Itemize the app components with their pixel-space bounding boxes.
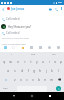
staticText: q — [3, 60, 5, 64]
button[interactable]: . — [47, 84, 53, 93]
button[interactable]: Call — [53, 6, 59, 12]
button[interactable]: e — [14, 57, 21, 66]
button[interactable]: Voice — [54, 45, 63, 50]
staticText: m — [50, 78, 53, 82]
button[interactable]: Send — [53, 84, 64, 93]
button[interactable]: c — [24, 75, 30, 84]
button[interactable]: ?123 — [0, 84, 11, 93]
button[interactable]: Hey! How are you? — [1, 24, 32, 29]
staticText: k — [51, 69, 53, 73]
staticText: c — [26, 78, 28, 82]
button[interactable]: m — [48, 75, 54, 84]
staticText: Call ended — [6, 31, 20, 35]
button[interactable]: Sticker — [18, 45, 27, 50]
staticText: Joe Jonas — [11, 7, 25, 11]
button[interactable]: Shift — [0, 75, 11, 84]
button[interactable]: k — [49, 66, 55, 75]
button[interactable]: Location — [45, 45, 54, 50]
button[interactable]: u — [40, 57, 46, 66]
button[interactable]: Home — [28, 92, 36, 100]
button[interactable]: Call ended — [2, 17, 20, 21]
button[interactable]: r — [21, 57, 28, 66]
button[interactable]: i — [46, 57, 52, 66]
button[interactable]: p — [58, 57, 64, 66]
button[interactable]: The — [22, 52, 43, 57]
button[interactable]: Video call — [47, 6, 53, 12]
button[interactable]: Recents — [46, 92, 54, 100]
staticText: . — [50, 87, 51, 90]
button[interactable]: Back — [0, 6, 6, 12]
staticText: e — [17, 60, 19, 64]
staticText: j — [46, 69, 47, 73]
staticText: b — [38, 78, 40, 82]
staticText: o — [54, 60, 56, 64]
staticText: t — [30, 60, 32, 64]
button[interactable]: n — [42, 75, 48, 84]
button[interactable]: Attach — [36, 45, 45, 50]
button[interactable]: j — [43, 66, 49, 75]
staticText: Hey! How are you? — [8, 25, 32, 29]
button[interactable]: Gif — [27, 45, 36, 50]
staticText: y — [36, 60, 38, 64]
button[interactable]: q — [0, 57, 7, 66]
staticText: I'm — [52, 53, 56, 56]
button[interactable]: Backspace — [54, 75, 64, 84]
staticText: u — [42, 60, 44, 64]
button[interactable]: Camera — [1, 45, 9, 50]
staticText: x — [20, 78, 22, 82]
button[interactable]: o — [52, 57, 58, 66]
button[interactable]: y — [34, 57, 40, 66]
staticText: a — [7, 69, 9, 73]
button[interactable]: , — [11, 84, 17, 93]
button[interactable]: Call ended — [2, 31, 20, 35]
button[interactable]: b — [36, 75, 42, 84]
button[interactable]: a — [4, 66, 11, 75]
staticText: Type a message here — [2, 42, 26, 45]
button[interactable]: v — [30, 75, 36, 84]
button[interactable]: x — [18, 75, 24, 84]
staticText: I — [11, 53, 12, 56]
button[interactable]: I — [0, 52, 22, 57]
button[interactable]: g — [31, 66, 37, 75]
button[interactable]: Back — [10, 92, 18, 100]
staticText: s — [14, 69, 16, 73]
staticText: f — [28, 69, 29, 73]
staticText: Tap here to call back again — [2, 37, 30, 40]
button[interactable]: s — [11, 66, 18, 75]
staticText: z — [14, 78, 16, 82]
staticText: g — [33, 69, 35, 73]
staticText: The — [31, 53, 35, 56]
staticText: i — [49, 60, 50, 64]
staticText: h — [39, 69, 41, 73]
staticText: Call ended — [6, 17, 20, 21]
button[interactable]: w — [7, 57, 14, 66]
button[interactable]: h — [37, 66, 43, 75]
button[interactable]: More options — [59, 6, 64, 11]
staticText: r — [24, 60, 26, 64]
button[interactable]: f — [25, 66, 31, 75]
staticText: l — [58, 69, 59, 73]
button[interactable]: d — [18, 66, 25, 75]
staticText: 9:41 — [58, 1, 63, 4]
button[interactable]: l — [55, 66, 61, 75]
button[interactable]: z — [11, 75, 18, 84]
staticText: n — [44, 78, 46, 82]
button[interactable]: Emoji — [9, 45, 18, 50]
button[interactable]: t — [28, 57, 34, 66]
staticText: d — [21, 69, 23, 73]
button[interactable]: I'm — [43, 52, 64, 57]
staticText: w — [9, 60, 12, 64]
staticText: ?123 — [3, 87, 8, 90]
staticText: v — [32, 78, 34, 82]
staticText: p — [60, 60, 62, 64]
